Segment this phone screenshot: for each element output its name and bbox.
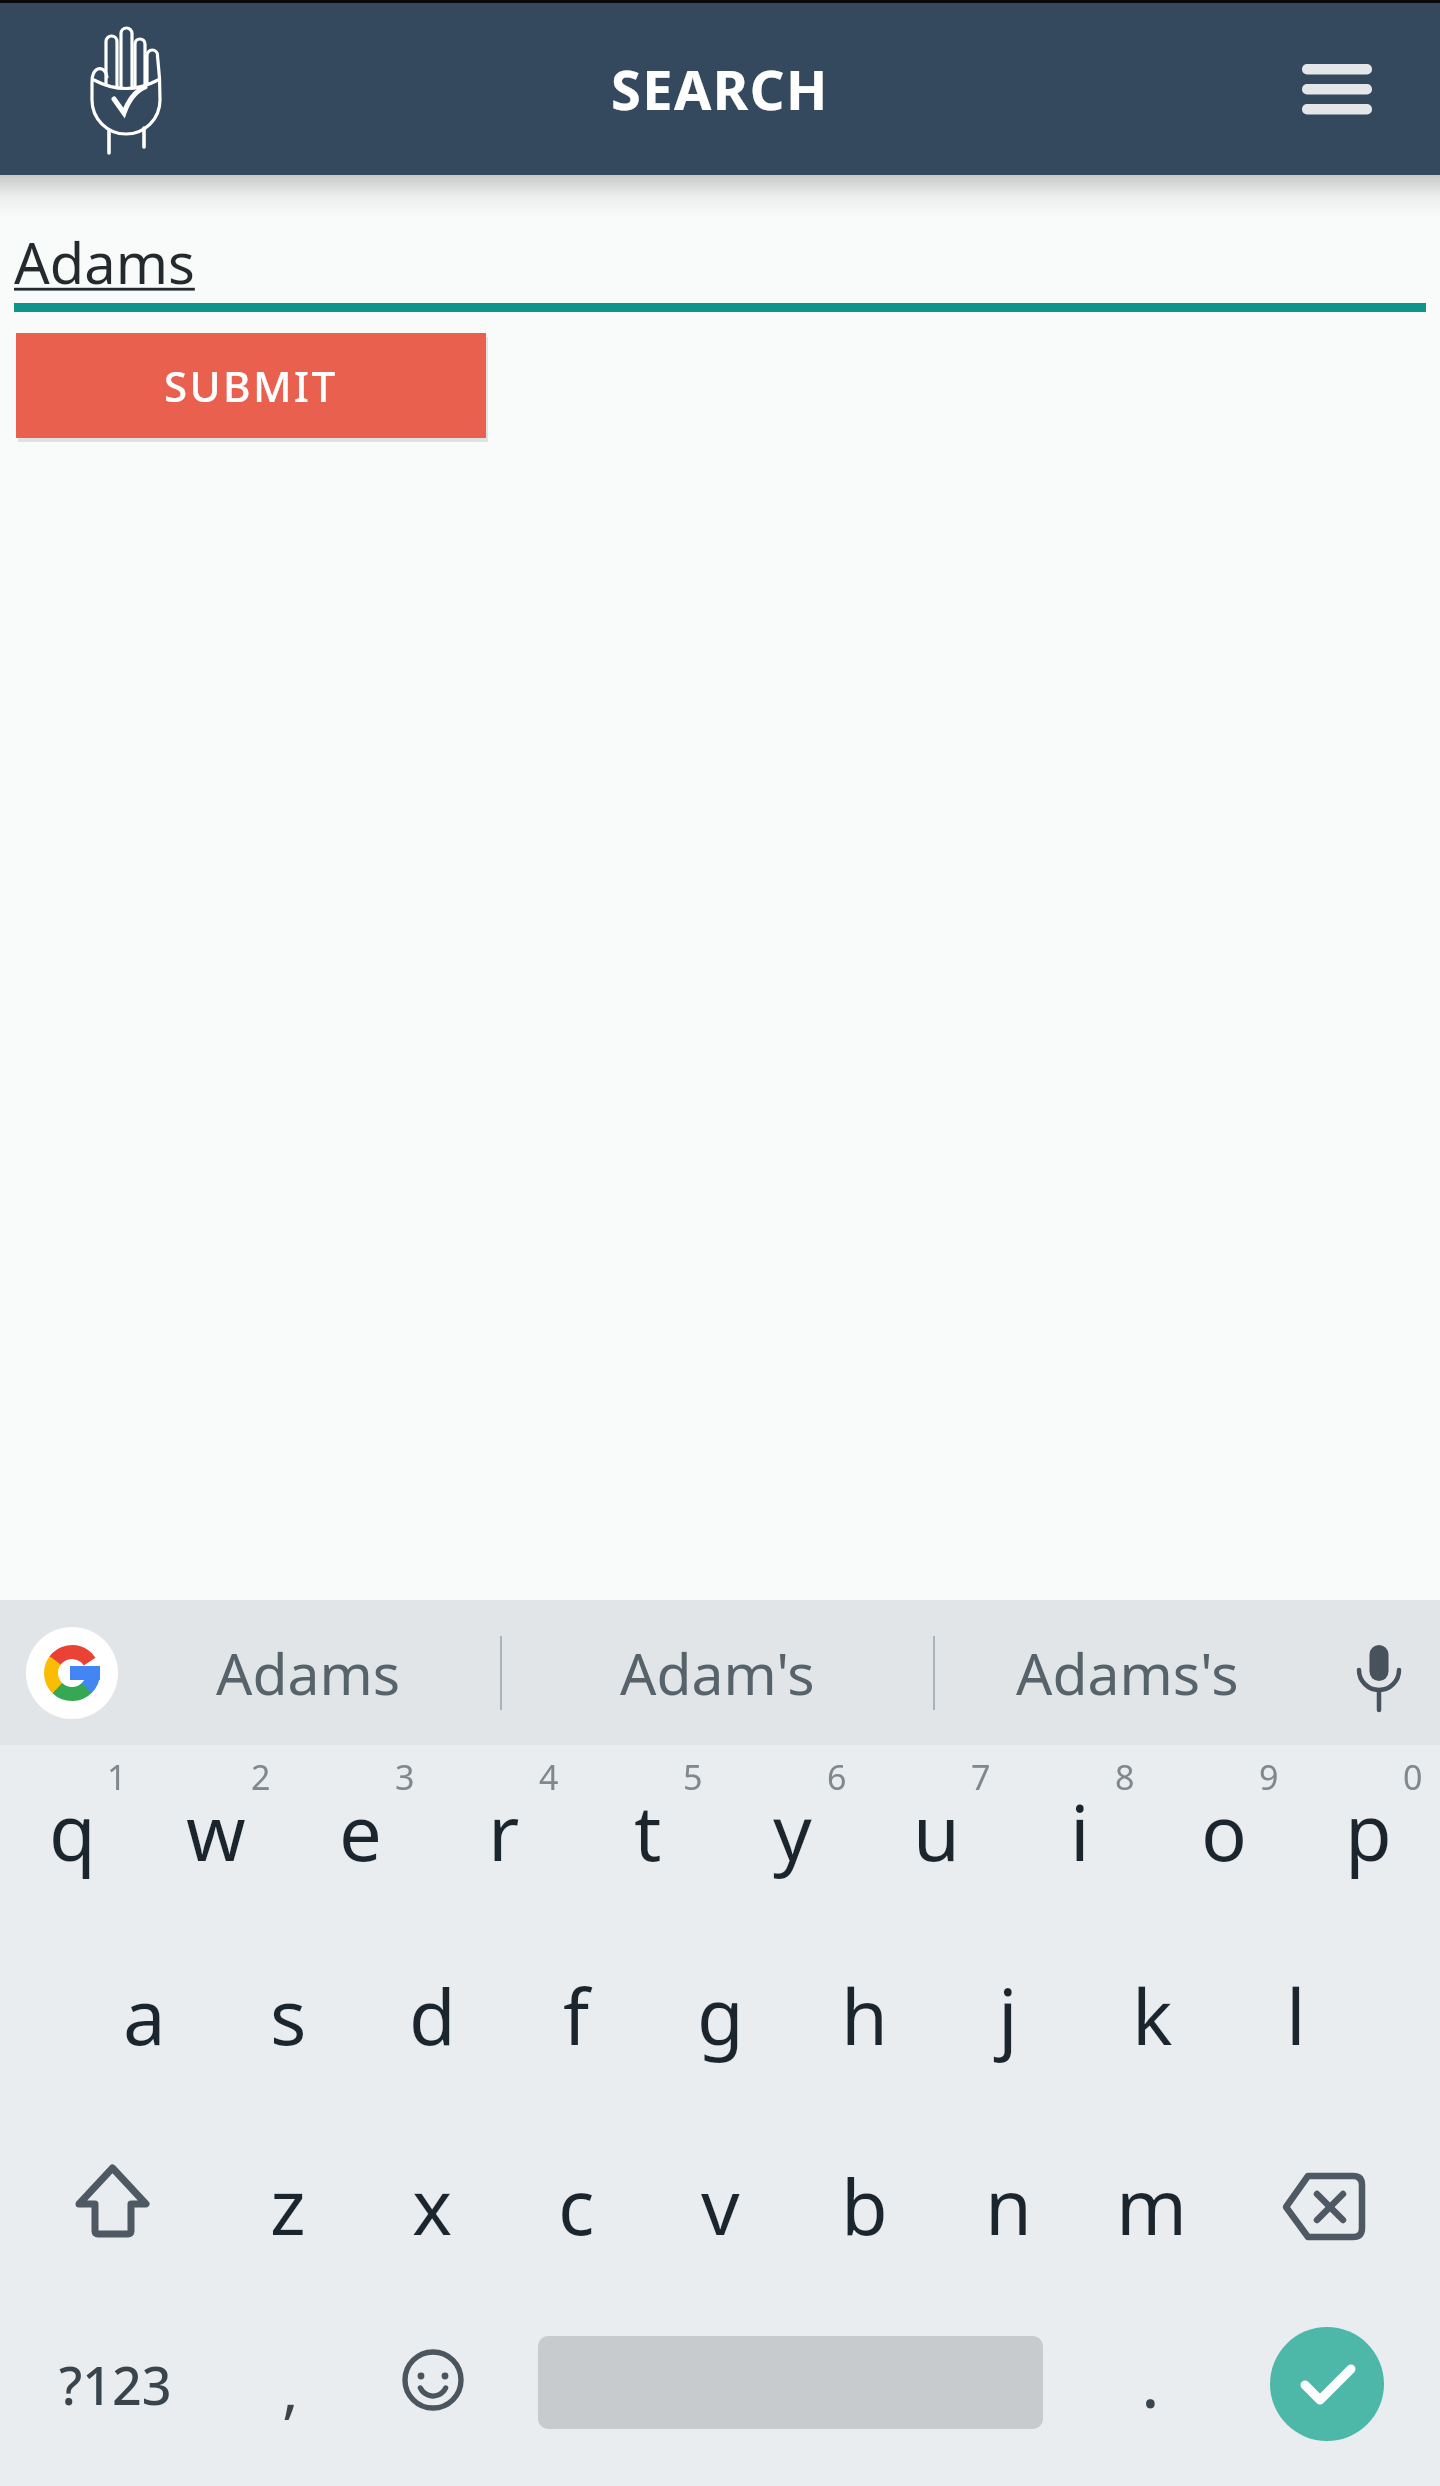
staticText: c bbox=[558, 2154, 595, 2258]
staticText: b bbox=[841, 2154, 888, 2258]
staticText: m bbox=[1116, 2154, 1188, 2258]
staticText: y bbox=[773, 1780, 812, 1884]
staticText: h bbox=[841, 1964, 888, 2068]
staticText: g bbox=[697, 1964, 744, 2068]
staticText: 5 bbox=[683, 1754, 703, 1800]
staticText: SEARCH bbox=[611, 52, 829, 126]
button[interactable]: , bbox=[240, 2318, 340, 2458]
staticText: ?123 bbox=[59, 2349, 172, 2420]
staticText: s bbox=[270, 1964, 307, 2068]
staticText: 0 bbox=[1403, 1754, 1423, 1800]
staticText: e bbox=[339, 1780, 382, 1884]
button[interactable]: z bbox=[216, 2126, 360, 2286]
button[interactable]: Adams bbox=[213, 1600, 403, 1745]
button[interactable] bbox=[395, 2345, 475, 2425]
staticText: , bbox=[282, 2346, 299, 2430]
staticText: 4 bbox=[539, 1754, 559, 1800]
staticText: f bbox=[563, 1964, 590, 2068]
button[interactable]: g bbox=[648, 1936, 792, 2096]
button[interactable] bbox=[40, 2140, 185, 2270]
staticText: q bbox=[49, 1780, 96, 1884]
button[interactable]: k bbox=[1080, 1936, 1224, 2096]
staticText: 7 bbox=[971, 1754, 991, 1800]
staticText: Adams's bbox=[1016, 1634, 1239, 1712]
button[interactable]: p bbox=[1296, 1752, 1440, 1912]
staticText: z bbox=[270, 2154, 306, 2258]
staticText: i bbox=[1070, 1780, 1090, 1884]
button[interactable]: SUBMIT bbox=[16, 333, 486, 438]
staticText: d bbox=[409, 1964, 456, 2068]
staticText: o bbox=[1201, 1780, 1247, 1884]
button[interactable]: Adams bbox=[14, 222, 514, 302]
button[interactable] bbox=[1340, 1625, 1420, 1725]
staticText: v bbox=[701, 2154, 740, 2258]
staticText: j bbox=[998, 1964, 1018, 2068]
staticText: 3 bbox=[395, 1754, 415, 1800]
staticText: SUBMIT bbox=[164, 357, 338, 414]
button[interactable]: o bbox=[1152, 1752, 1296, 1912]
button[interactable]: . bbox=[1100, 2310, 1200, 2450]
staticText: Adams bbox=[14, 224, 195, 300]
button[interactable]: h bbox=[792, 1936, 936, 2096]
staticText: p bbox=[1345, 1780, 1392, 1884]
button[interactable]: x bbox=[360, 2126, 504, 2286]
staticText: 8 bbox=[1115, 1754, 1135, 1800]
staticText: . bbox=[1141, 2333, 1160, 2428]
button[interactable] bbox=[80, 17, 170, 162]
staticText: n bbox=[985, 2154, 1032, 2258]
button[interactable]: u bbox=[864, 1752, 1008, 1912]
staticText: 6 bbox=[827, 1754, 847, 1800]
button[interactable]: d bbox=[360, 1936, 504, 2096]
button[interactable]: e bbox=[288, 1752, 432, 1912]
button[interactable]: Adam's bbox=[617, 1600, 817, 1745]
staticText: Adam's bbox=[620, 1634, 815, 1712]
staticText: 2 bbox=[251, 1754, 271, 1800]
button[interactable]: a bbox=[72, 1936, 216, 2096]
staticText: k bbox=[1132, 1964, 1173, 2068]
button[interactable]: Adams's bbox=[1012, 1600, 1242, 1745]
staticText: r bbox=[488, 1780, 520, 1884]
button[interactable]: c bbox=[504, 2126, 648, 2286]
button[interactable]: y bbox=[720, 1752, 864, 1912]
staticText: x bbox=[412, 2154, 453, 2258]
staticText: u bbox=[913, 1780, 960, 1884]
staticText: Adams bbox=[216, 1634, 401, 1712]
staticText: t bbox=[634, 1780, 662, 1884]
button[interactable]: n bbox=[936, 2126, 1080, 2286]
button[interactable] bbox=[1270, 2327, 1384, 2441]
staticText: 9 bbox=[1259, 1754, 1279, 1800]
staticText: a bbox=[123, 1964, 166, 2068]
staticText: 1 bbox=[107, 1754, 127, 1800]
button[interactable]: r bbox=[432, 1752, 576, 1912]
button[interactable]: t bbox=[576, 1752, 720, 1912]
button[interactable]: ?123 bbox=[30, 2328, 200, 2440]
button[interactable] bbox=[26, 1627, 118, 1719]
button[interactable]: m bbox=[1080, 2126, 1224, 2286]
button[interactable]: f bbox=[504, 1936, 648, 2096]
button[interactable]: w bbox=[144, 1752, 288, 1912]
staticText: l bbox=[1286, 1964, 1306, 2068]
button[interactable]: q bbox=[0, 1752, 144, 1912]
staticText: w bbox=[186, 1780, 246, 1884]
button[interactable]: j bbox=[936, 1936, 1080, 2096]
button[interactable]: v bbox=[648, 2126, 792, 2286]
button[interactable]: l bbox=[1224, 1936, 1368, 2096]
button[interactable] bbox=[1272, 33, 1402, 148]
button[interactable]: s bbox=[216, 1936, 360, 2096]
button[interactable]: i bbox=[1008, 1752, 1152, 1912]
button[interactable]: b bbox=[792, 2126, 936, 2286]
button[interactable] bbox=[1255, 2140, 1400, 2270]
